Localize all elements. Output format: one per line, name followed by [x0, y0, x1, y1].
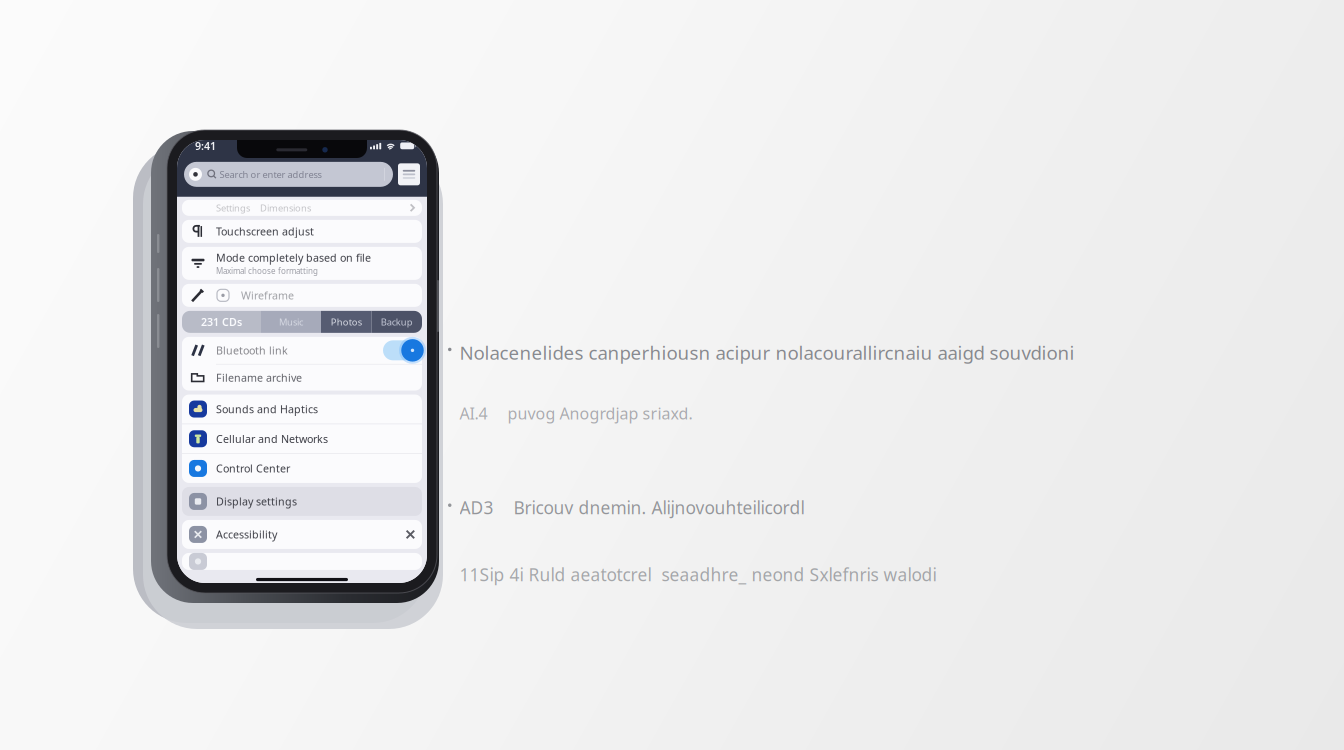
staticText: Nolacenelides canperhiousn acipur nolaco…	[459, 340, 1074, 365]
staticText: Photos	[331, 316, 362, 328]
staticText: Music	[279, 316, 303, 328]
button[interactable]: Sounds and Haptics	[182, 394, 422, 423]
staticText: Mode completely based on file	[216, 250, 371, 265]
staticText: Bluetooth link	[216, 343, 288, 357]
button[interactable]: Accessibility	[182, 520, 422, 549]
staticText: Wireframe	[241, 288, 294, 302]
button[interactable]: Settings Dimensions	[182, 200, 422, 216]
staticText: 9:41	[195, 139, 216, 153]
button[interactable]: Wireframe	[182, 284, 422, 307]
staticText: Sounds and Haptics	[216, 402, 318, 416]
button[interactable]: Display settings	[182, 487, 422, 516]
staticText: Settings Dimensions	[216, 202, 311, 214]
staticText: AI.4 puvog Anogrdjap sriaxd.	[459, 403, 692, 424]
button[interactable]: Filename archive	[182, 365, 422, 391]
staticText: 11Sip 4i Ruld aeatotcrel seaadhre_ neond…	[459, 563, 936, 586]
button[interactable]: Control Center	[182, 454, 422, 483]
staticText: 231 CDs	[201, 315, 242, 329]
staticText: Accessibility	[216, 527, 277, 542]
staticText: Display settings	[216, 494, 297, 509]
button[interactable]: Bluetooth link	[182, 337, 422, 364]
button[interactable]: Search or enter address	[184, 162, 393, 187]
staticText: Control Center	[216, 461, 290, 476]
button[interactable]: Reader view	[398, 163, 420, 185]
staticText: Search or enter address	[219, 168, 321, 181]
staticText: Backup	[381, 316, 413, 328]
button[interactable]: Touchscreen adjust	[182, 220, 422, 243]
staticText: Touchscreen adjust	[216, 224, 314, 238]
staticText: Cellular and Networks	[216, 432, 328, 446]
staticText: Maximal choose formatting	[216, 266, 318, 276]
staticText: Filename archive	[216, 370, 302, 385]
button[interactable]	[182, 553, 422, 570]
button[interactable]: Mode completely based on file	[182, 247, 422, 280]
button[interactable]: Cellular and Networks	[182, 424, 422, 453]
staticText: AD3 Bricouv dnemin. Alijnovouhteilicordl	[459, 496, 804, 519]
